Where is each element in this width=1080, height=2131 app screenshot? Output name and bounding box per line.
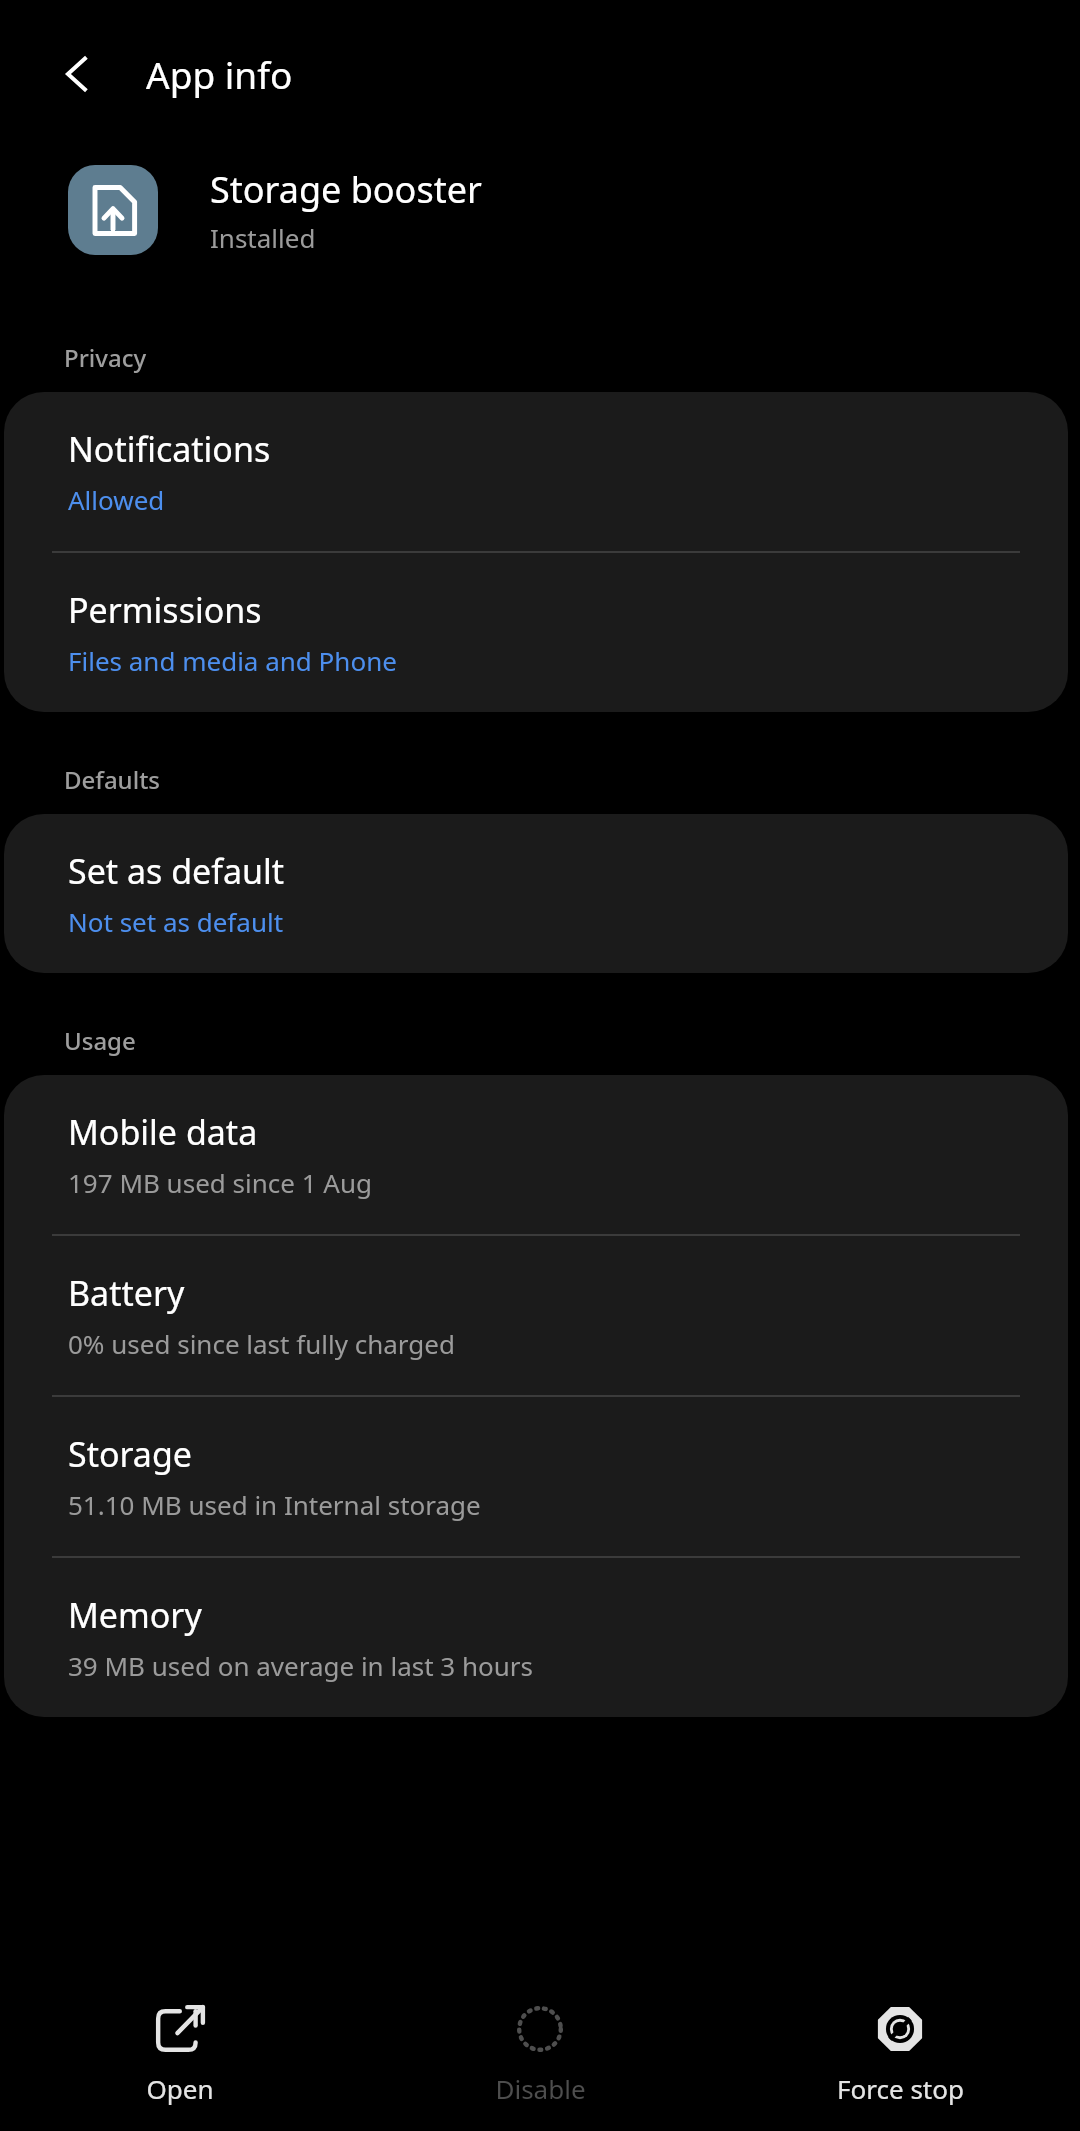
button[interactable]: Mobile data bbox=[4, 1075, 1068, 1234]
staticText: Set as default bbox=[68, 848, 285, 894]
staticText: Defaults bbox=[64, 763, 160, 796]
button[interactable]: Set as default bbox=[4, 814, 1068, 973]
staticText: 51.10 MB used in Internal storage bbox=[68, 1487, 481, 1522]
button[interactable]: Notifications bbox=[4, 392, 1068, 551]
staticText: Battery bbox=[68, 1270, 185, 1316]
staticText: 0% used since last fully charged bbox=[68, 1326, 455, 1361]
staticText: Files and media and Phone bbox=[68, 643, 397, 678]
staticText: Notifications bbox=[68, 426, 271, 472]
button[interactable]: Disable bbox=[360, 1975, 720, 2106]
staticText: Privacy bbox=[64, 341, 147, 374]
staticText: 39 MB used on average in last 3 hours bbox=[68, 1648, 534, 1683]
button[interactable]: Force stop bbox=[720, 1975, 1080, 2106]
staticText: Not set as default bbox=[68, 904, 284, 939]
staticText: Installed bbox=[210, 220, 316, 255]
staticText: Force stop bbox=[837, 2071, 964, 2106]
staticText: Permissions bbox=[68, 587, 262, 633]
staticText: Disable bbox=[495, 2071, 586, 2106]
button[interactable]: Permissions bbox=[4, 553, 1068, 712]
button[interactable]: Storage booster bbox=[0, 148, 1080, 272]
staticText: Mobile data bbox=[68, 1109, 258, 1155]
button[interactable]: Open bbox=[0, 1975, 360, 2106]
button[interactable]: Battery bbox=[4, 1236, 1068, 1395]
staticText: Allowed bbox=[68, 482, 165, 517]
other: Force stop bbox=[874, 2003, 926, 2055]
staticText: Open bbox=[146, 2071, 214, 2106]
other: Disable bbox=[514, 2003, 566, 2055]
staticText: Storage bbox=[68, 1431, 193, 1477]
staticText: App info bbox=[146, 49, 293, 99]
staticText: Memory bbox=[68, 1592, 202, 1638]
other: Open bbox=[154, 2003, 206, 2055]
button[interactable]: Memory bbox=[4, 1558, 1068, 1717]
staticText: Usage bbox=[64, 1024, 136, 1057]
staticText: 197 MB used since 1 Aug bbox=[68, 1165, 372, 1200]
button[interactable]: Storage bbox=[4, 1397, 1068, 1556]
button[interactable]: Back bbox=[34, 30, 122, 118]
staticText: Storage booster bbox=[210, 165, 482, 214]
